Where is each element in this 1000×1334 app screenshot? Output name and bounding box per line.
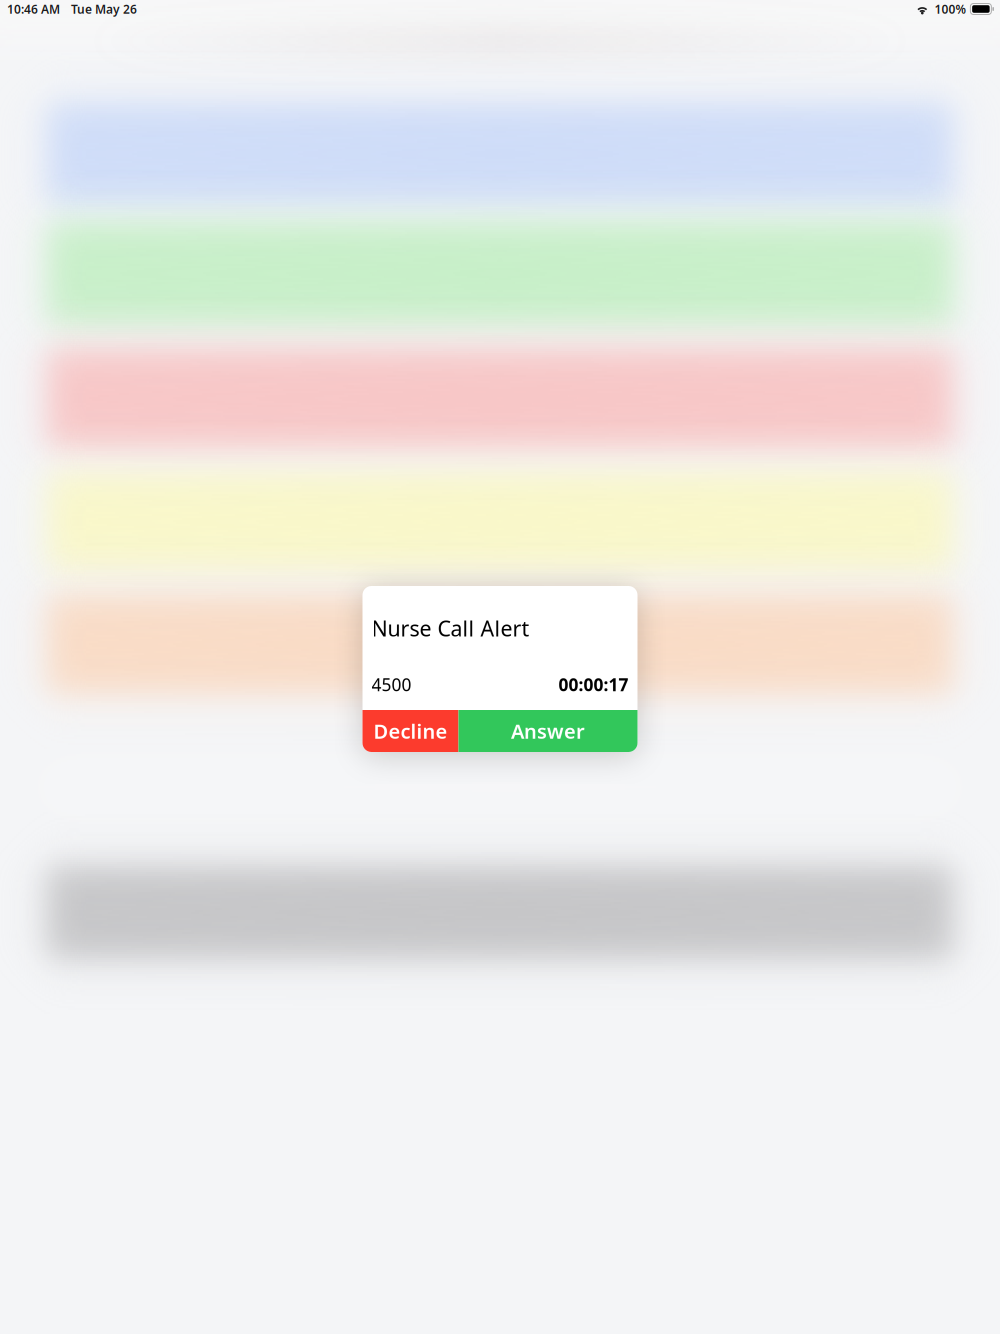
staticText: 4500 [371, 673, 411, 696]
staticText: 100% [934, 1, 966, 17]
staticText: 10:46 AM [7, 1, 60, 17]
staticText: 00:00:17 [558, 673, 628, 696]
button[interactable]: Decline [362, 710, 458, 752]
staticText: Nurse Call Alert [371, 614, 529, 642]
staticText: Answer [511, 718, 585, 744]
staticText: Tue May 26 [71, 1, 137, 17]
button[interactable]: Answer [458, 710, 637, 752]
staticText: Decline [373, 718, 447, 744]
